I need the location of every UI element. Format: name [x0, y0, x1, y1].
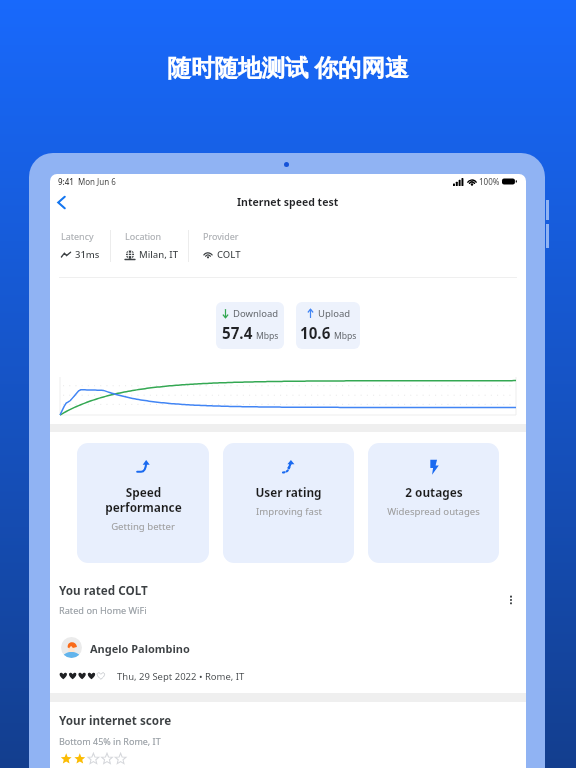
- staticText: Your internet score: [59, 712, 172, 728]
- staticText: Mbps: [334, 330, 357, 342]
- staticText: You rated COLT: [59, 582, 148, 598]
- staticText: Mon Jun 6: [78, 176, 116, 187]
- staticText: Thu, 29 Sept 2022 • Rome, IT: [117, 670, 245, 683]
- staticText: Download: [233, 307, 279, 320]
- staticText: User rating: [255, 484, 322, 500]
- staticText: Mbps: [256, 330, 279, 342]
- staticText: 2 outages: [405, 484, 463, 500]
- staticText: COLT: [217, 248, 241, 261]
- staticText: Latency: [61, 230, 94, 242]
- staticText: Location: [125, 230, 162, 242]
- staticText: Widespread outages: [387, 505, 480, 518]
- staticText: 10.6: [300, 323, 331, 344]
- button[interactable]: User rating: [223, 443, 354, 563]
- staticText: Provider: [203, 230, 239, 242]
- staticText: Getting better: [111, 520, 175, 533]
- button[interactable]: Back: [50, 190, 72, 214]
- staticText: Angelo Palombino: [90, 641, 190, 656]
- staticText: 9:41: [58, 176, 74, 187]
- staticText: Milan, IT: [139, 248, 179, 261]
- staticText: 31ms: [75, 248, 100, 261]
- staticText: Internet speed test: [237, 195, 339, 209]
- staticText: Speed performance: [105, 484, 182, 515]
- staticText: Rated on Home WiFi: [59, 604, 147, 617]
- staticText: Improving fast: [256, 505, 322, 518]
- staticText: 100%: [479, 176, 500, 187]
- button[interactable]: 2 outages: [368, 443, 499, 563]
- staticText: 57.4: [222, 323, 253, 344]
- button[interactable]: Download: [216, 302, 284, 349]
- staticText: Upload: [318, 307, 351, 320]
- staticText: Bottom 45% in Rome, IT: [59, 735, 161, 747]
- button[interactable]: Upload: [296, 302, 360, 349]
- staticText: 随时随地测试 你的网速: [0, 51, 576, 83]
- button[interactable]: Speed performance: [77, 443, 209, 563]
- button[interactable]: More options: [501, 590, 521, 610]
